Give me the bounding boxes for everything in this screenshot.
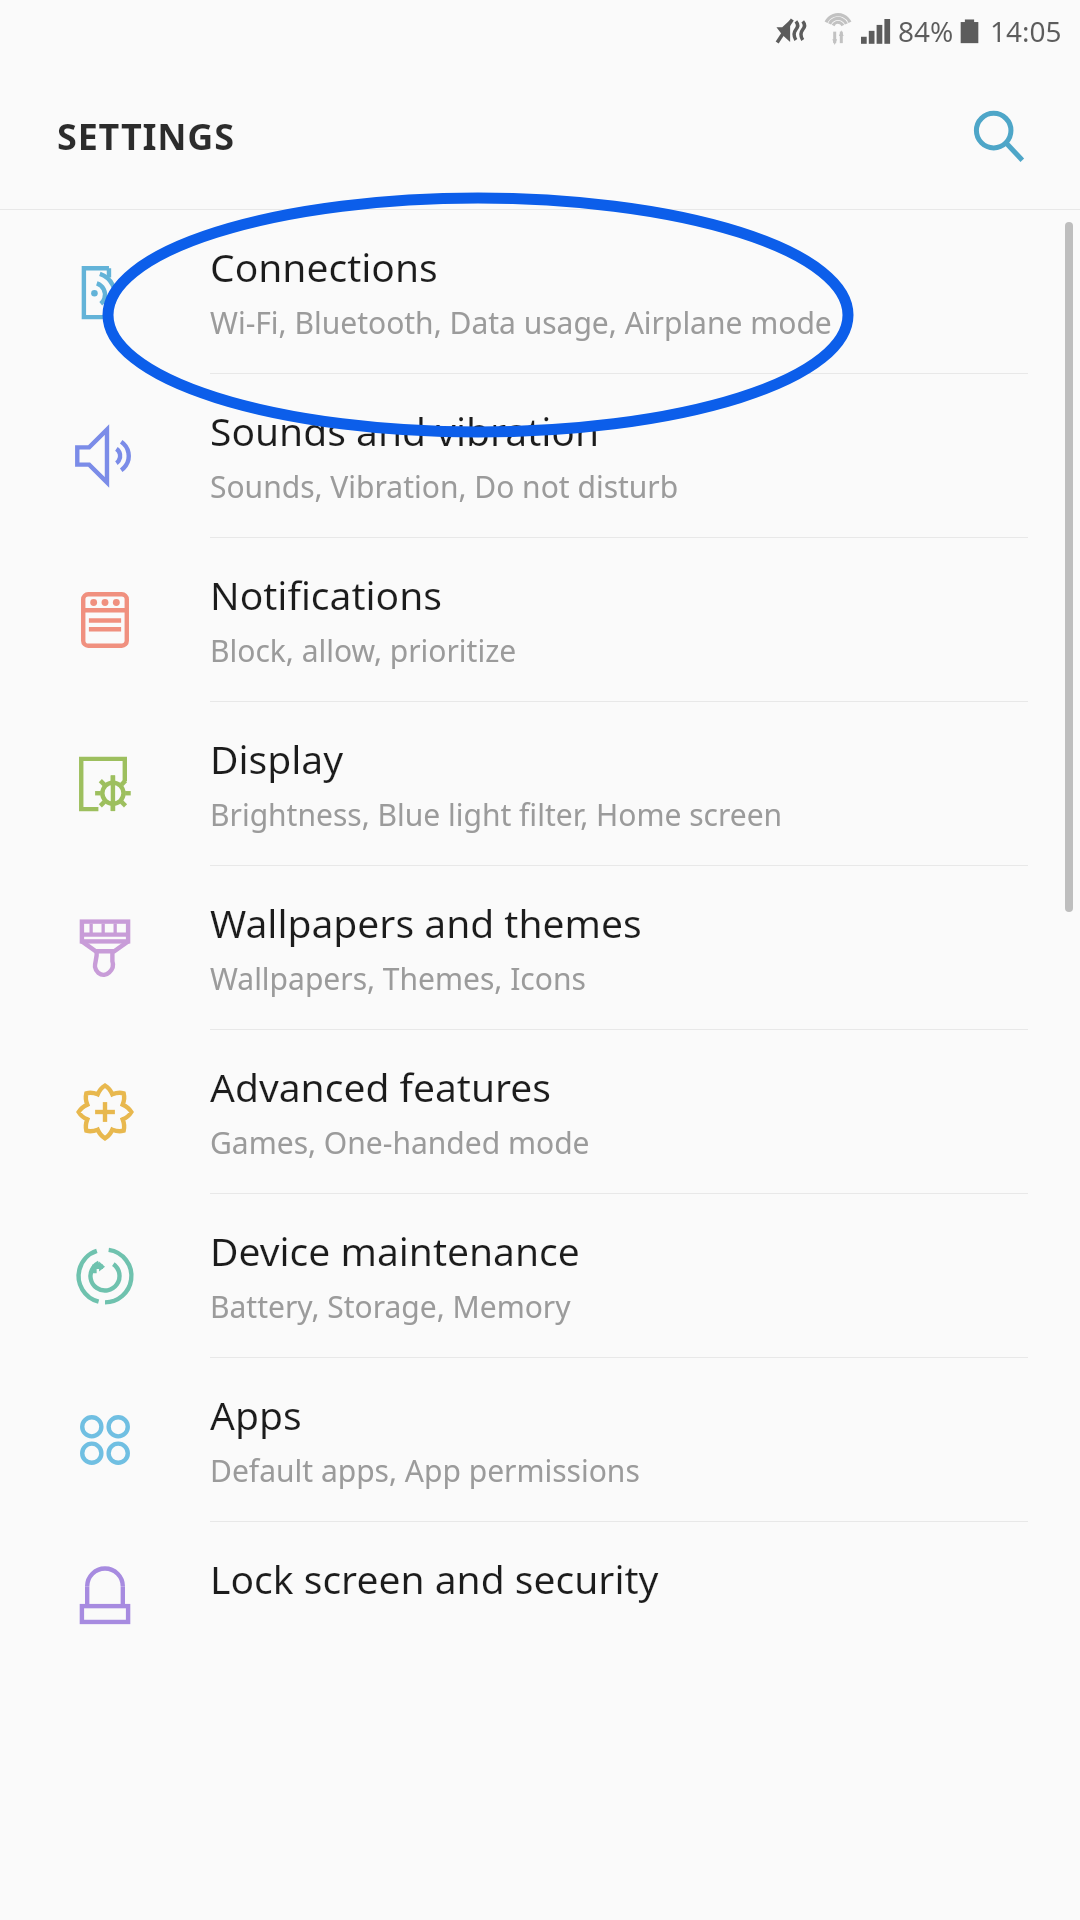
staticText: Display — [210, 732, 344, 785]
button[interactable]: Device maintenance — [0, 1194, 1080, 1357]
button[interactable]: Sounds and vibration — [0, 374, 1080, 537]
staticText: Advanced features — [210, 1060, 552, 1113]
staticText: Battery, Storage, Memory — [210, 1286, 571, 1327]
staticText: Device maintenance — [210, 1224, 580, 1277]
staticText: Brightness, Blue light filter, Home scre… — [210, 794, 783, 835]
staticText: Wi-Fi, Bluetooth, Data usage, Airplane m… — [210, 302, 832, 343]
button[interactable]: Display — [0, 702, 1080, 865]
staticText: Notifications — [210, 568, 442, 621]
staticText: Lock screen and security — [210, 1552, 659, 1605]
staticText: Sounds, Vibration, Do not disturb — [210, 466, 679, 507]
staticText: Block, allow, prioritize — [210, 630, 517, 671]
staticText: Apps — [210, 1388, 302, 1441]
button[interactable]: Notifications — [0, 538, 1080, 701]
staticText: 84% — [898, 12, 954, 50]
button[interactable]: Lock screen and security — [0, 1522, 1080, 1652]
button[interactable]: Connections — [0, 210, 1080, 373]
staticText: Sounds and vibration — [210, 404, 600, 457]
button[interactable]: Advanced features — [0, 1030, 1080, 1193]
button[interactable]: Search — [956, 94, 1040, 178]
staticText: 14:05 — [990, 12, 1062, 50]
staticText: Connections — [210, 240, 438, 293]
staticText: Wallpapers and themes — [210, 896, 642, 949]
staticText: Default apps, App permissions — [210, 1450, 640, 1491]
staticText: Games, One-handed mode — [210, 1122, 590, 1163]
button[interactable]: Apps — [0, 1358, 1080, 1521]
button[interactable]: Wallpapers and themes — [0, 866, 1080, 1029]
staticText: Wallpapers, Themes, Icons — [210, 958, 586, 999]
staticText: SETTINGS — [57, 112, 235, 161]
